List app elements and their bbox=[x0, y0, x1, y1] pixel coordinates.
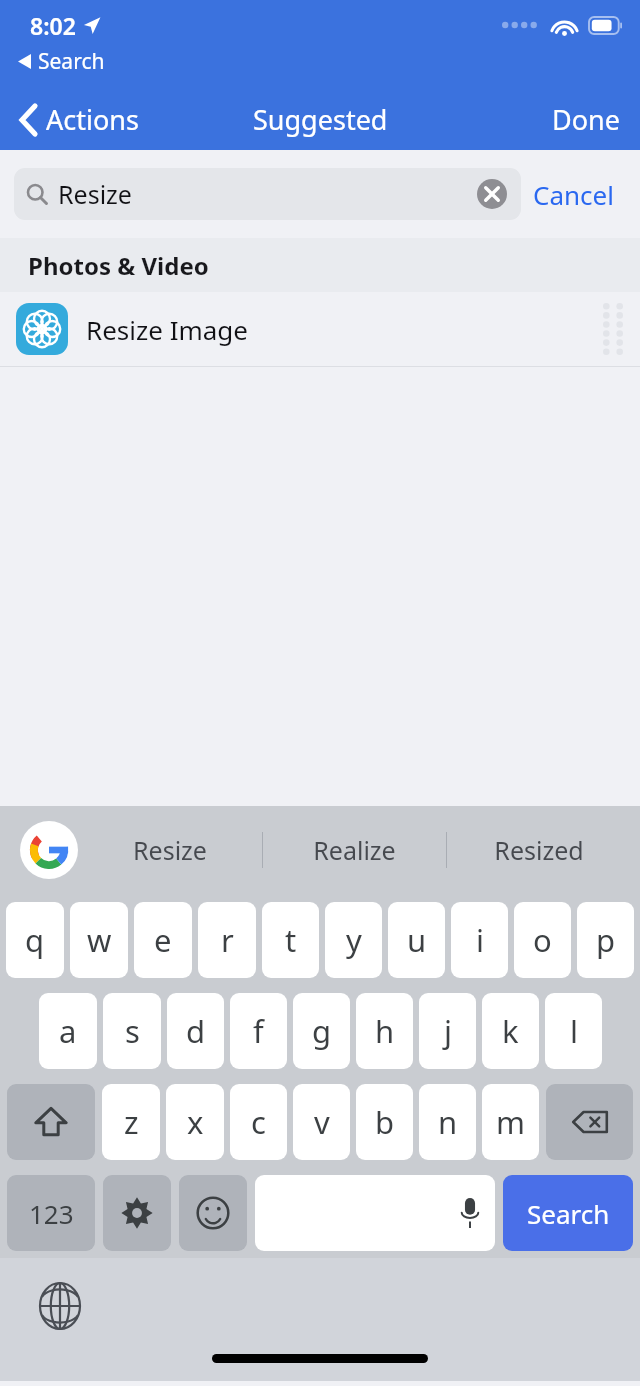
button[interactable]: e bbox=[134, 902, 192, 978]
button[interactable]: i bbox=[451, 902, 508, 978]
staticText: Done bbox=[552, 101, 620, 138]
staticText: Realize bbox=[313, 833, 396, 867]
button[interactable]: Shift bbox=[7, 1084, 95, 1160]
button[interactable]: Search bbox=[503, 1175, 633, 1251]
staticText: q bbox=[25, 919, 45, 961]
button[interactable]: l bbox=[545, 993, 602, 1069]
staticText: Resized bbox=[494, 833, 584, 867]
staticText: s bbox=[125, 1010, 140, 1052]
staticText: i bbox=[476, 919, 484, 961]
staticText: d bbox=[186, 1010, 206, 1052]
button[interactable]: o bbox=[514, 902, 571, 978]
staticText: l bbox=[570, 1010, 578, 1052]
button[interactable]: x bbox=[166, 1084, 224, 1160]
button[interactable]: c bbox=[230, 1084, 287, 1160]
button[interactable]: r bbox=[198, 902, 256, 978]
button[interactable]: s bbox=[103, 993, 161, 1069]
button[interactable]: Settings bbox=[103, 1175, 171, 1251]
other: Reorder bbox=[600, 301, 626, 357]
staticText: k bbox=[502, 1010, 519, 1052]
staticText: Resize Image bbox=[86, 312, 249, 347]
staticText: a bbox=[59, 1010, 77, 1052]
staticText: y bbox=[346, 919, 362, 961]
button[interactable]: Resize bbox=[78, 806, 262, 894]
button[interactable]: Space bbox=[255, 1175, 495, 1251]
button[interactable]: Search bbox=[12, 44, 111, 79]
button[interactable]: q bbox=[6, 902, 64, 978]
staticText: h bbox=[375, 1010, 395, 1052]
staticText: e bbox=[154, 919, 172, 961]
staticText: n bbox=[438, 1101, 458, 1143]
staticText: j bbox=[444, 1010, 452, 1052]
button[interactable]: Realize bbox=[263, 806, 446, 894]
staticText: 123 bbox=[29, 1196, 74, 1231]
button[interactable]: d bbox=[167, 993, 224, 1069]
button[interactable]: m bbox=[482, 1084, 539, 1160]
button[interactable]: Clear text bbox=[475, 177, 509, 211]
button[interactable]: Resize bbox=[14, 168, 521, 220]
staticText: Resize bbox=[58, 177, 132, 211]
button[interactable]: f bbox=[230, 993, 287, 1069]
staticText: Actions bbox=[46, 101, 139, 138]
button[interactable]: b bbox=[356, 1084, 413, 1160]
button[interactable]: t bbox=[262, 902, 319, 978]
staticText: t bbox=[285, 919, 297, 961]
staticText: z bbox=[124, 1101, 139, 1143]
button[interactable]: Done bbox=[544, 95, 628, 144]
staticText: Suggested bbox=[253, 101, 388, 138]
staticText: o bbox=[533, 919, 552, 961]
button[interactable]: Backspace bbox=[546, 1084, 633, 1160]
staticText: f bbox=[253, 1010, 264, 1052]
button[interactable]: Resize Image bbox=[0, 292, 640, 366]
staticText: 8:02 bbox=[30, 10, 76, 41]
button[interactable]: Change language bbox=[34, 1280, 86, 1332]
button[interactable]: Google bbox=[20, 821, 78, 879]
staticText: w bbox=[87, 919, 112, 961]
staticText: u bbox=[407, 919, 427, 961]
button[interactable]: g bbox=[293, 993, 350, 1069]
staticText: Search bbox=[527, 1196, 610, 1231]
button[interactable]: Emoji bbox=[179, 1175, 247, 1251]
staticText: Cancel bbox=[533, 177, 614, 212]
button[interactable]: 123 bbox=[7, 1175, 95, 1251]
button[interactable]: v bbox=[293, 1084, 350, 1160]
staticText: Resize bbox=[133, 833, 207, 867]
button[interactable]: a bbox=[39, 993, 97, 1069]
staticText: v bbox=[314, 1101, 330, 1143]
staticText: b bbox=[375, 1101, 395, 1143]
button[interactable]: Actions bbox=[10, 95, 147, 144]
button[interactable]: p bbox=[577, 902, 634, 978]
button[interactable]: z bbox=[102, 1084, 160, 1160]
button[interactable]: u bbox=[388, 902, 445, 978]
staticText: m bbox=[496, 1101, 525, 1143]
staticText: x bbox=[187, 1101, 204, 1143]
staticText: c bbox=[251, 1101, 266, 1143]
staticText: r bbox=[221, 919, 234, 961]
button[interactable]: w bbox=[70, 902, 128, 978]
button[interactable]: y bbox=[325, 902, 382, 978]
button[interactable]: Cancel bbox=[521, 169, 626, 220]
staticText: Photos & Video bbox=[28, 249, 209, 282]
button[interactable]: k bbox=[482, 993, 539, 1069]
button[interactable]: n bbox=[419, 1084, 476, 1160]
button[interactable]: Resized bbox=[447, 806, 630, 894]
button[interactable]: h bbox=[356, 993, 413, 1069]
staticText: p bbox=[596, 919, 616, 961]
staticText: g bbox=[312, 1010, 332, 1052]
button[interactable]: j bbox=[419, 993, 476, 1069]
staticText: Search bbox=[38, 47, 105, 76]
